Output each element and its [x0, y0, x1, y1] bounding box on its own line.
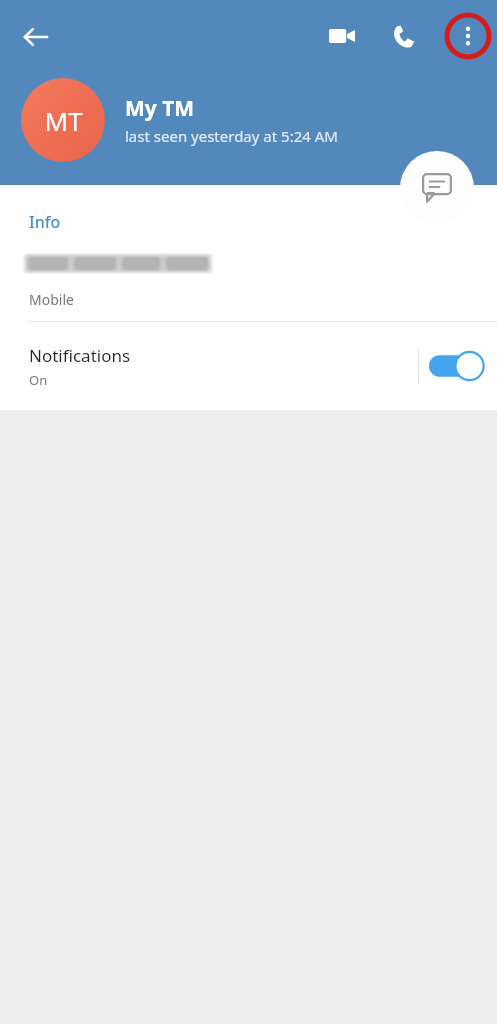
staticText: last seen yesterday at 5:24 AM [125, 126, 338, 146]
button[interactable]: Notifications [0, 322, 497, 410]
button[interactable]: Back [12, 13, 60, 61]
button[interactable]: Call [380, 13, 428, 61]
button[interactable]: Send message [400, 151, 474, 225]
button[interactable]: Video call [318, 12, 366, 60]
staticText: My TM [125, 94, 195, 123]
staticText: Notifications [29, 344, 131, 367]
staticText: Info [29, 211, 61, 233]
button[interactable]: More options [444, 12, 492, 60]
button[interactable]: Notifications toggle [419, 338, 491, 394]
staticText: On [29, 371, 48, 389]
button[interactable]: MT [21, 78, 105, 162]
staticText: MT [44, 103, 83, 138]
staticText: Mobile [29, 290, 74, 309]
